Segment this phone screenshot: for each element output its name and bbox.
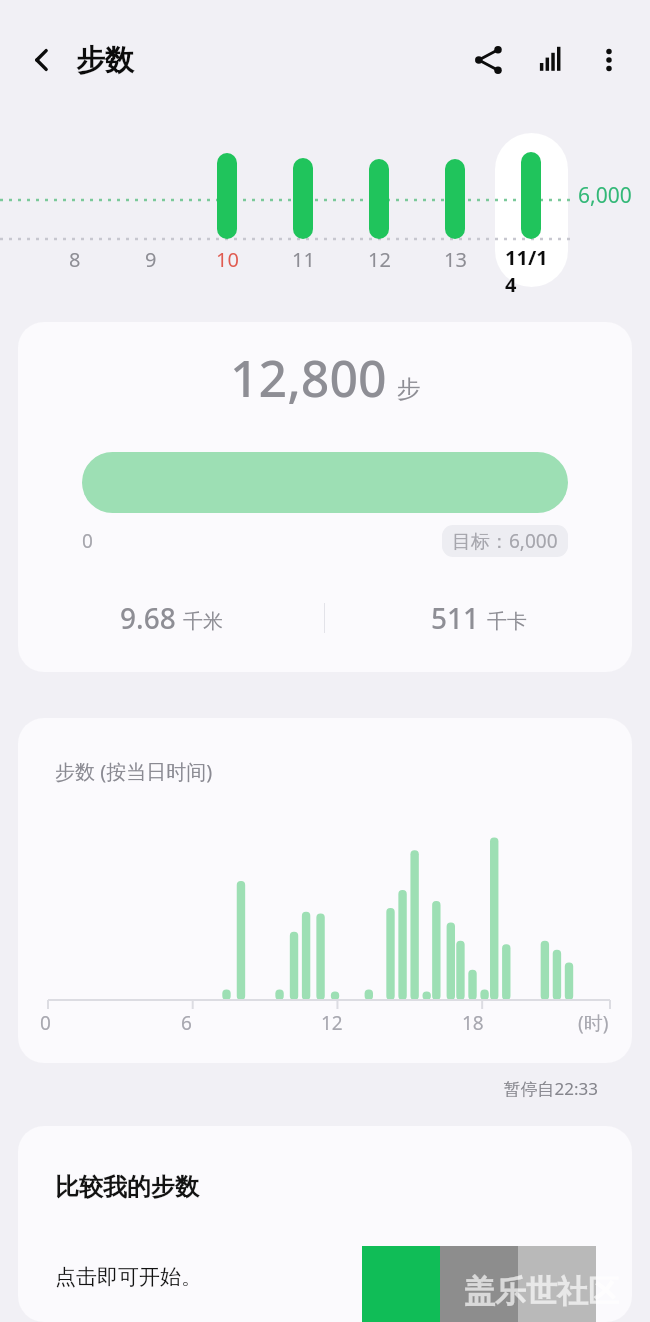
staticText: 12,800 <box>230 344 387 412</box>
staticText: 比较我的步数 <box>55 1172 199 1202</box>
staticText: 18 <box>462 1010 484 1036</box>
staticText: 12 <box>368 246 391 273</box>
staticText: 千卡 <box>487 609 527 634</box>
button[interactable]: 11/14 <box>495 133 568 287</box>
button[interactable]: More options <box>582 33 636 87</box>
staticText: 11 <box>292 246 315 273</box>
button[interactable]: 11 <box>277 246 329 273</box>
button[interactable]: 步数 (按当日时间) <box>18 718 632 1063</box>
button[interactable]: 比较我的步数 <box>18 1126 632 1322</box>
staticText: 10 <box>216 246 239 273</box>
staticText: 6,000 <box>578 181 632 210</box>
staticText: 0 <box>82 528 93 554</box>
button[interactable]: 12 <box>353 246 405 273</box>
staticText: 暂停自22:33 <box>0 1077 598 1100</box>
button[interactable]: 13 <box>429 246 481 273</box>
staticText: 步数 <box>76 42 134 79</box>
staticText: 步数 (按当日时间) <box>55 758 213 785</box>
button[interactable]: Back <box>14 32 70 88</box>
button[interactable]: 8 <box>49 246 101 273</box>
staticText: 步 <box>397 374 421 404</box>
staticText: (时) <box>578 1010 609 1036</box>
staticText: 8 <box>69 246 81 273</box>
button[interactable]: 9 <box>125 246 177 273</box>
staticText: 0 <box>40 1010 51 1036</box>
staticText: 9 <box>145 246 157 273</box>
staticText: 12 <box>321 1010 343 1036</box>
button[interactable]: 12,800 <box>18 322 632 672</box>
staticText: 6 <box>181 1010 192 1036</box>
staticText: 13 <box>444 246 467 273</box>
staticText: 千米 <box>183 609 223 634</box>
staticText: 511 <box>431 599 480 637</box>
staticText: 9.68 <box>120 599 176 637</box>
staticText: @你是我的恋歌 <box>432 1318 632 1322</box>
button[interactable]: 10 <box>201 246 253 273</box>
staticText: 点击即可开始。 <box>55 1264 202 1290</box>
button[interactable]: Chart <box>522 31 580 89</box>
staticText: 目标：6,000 <box>452 528 558 554</box>
staticText: 11/14 <box>505 244 557 298</box>
staticText: 盖乐世社区 <box>464 1272 619 1311</box>
button[interactable]: Share <box>460 31 518 89</box>
